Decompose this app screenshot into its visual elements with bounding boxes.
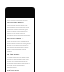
staticText: A new species of deep sea coral is disco… [7,56,31,68]
staticText: Did you know ... [7,37,24,40]
staticText: From today's featured article [7,19,28,21]
staticText: Hurricane Emily was the strongest hurric… [7,24,31,36]
staticText: that a fossil of a flowering plant was f… [7,40,31,52]
staticText: On this day [7,69,19,72]
staticText: In the news [7,53,20,56]
staticText: Hurricane Emily [7,21,24,24]
